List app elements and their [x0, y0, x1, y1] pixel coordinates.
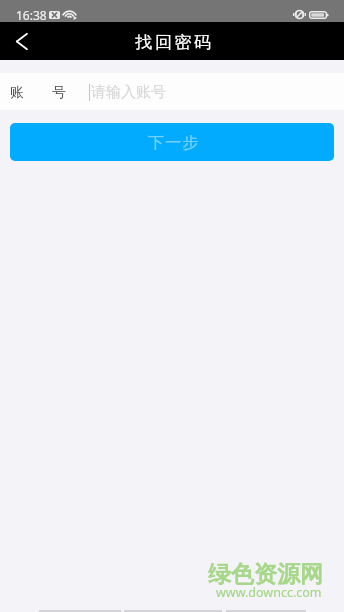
staticText: www.downcc.com — [216, 584, 322, 601]
button[interactable]: 下一步 — [10, 123, 334, 161]
staticText: 下一步 — [148, 133, 200, 153]
button[interactable]: 账 — [0, 73, 344, 110]
staticText: 号 — [52, 84, 66, 102]
staticText: 16:38 — [16, 7, 47, 23]
staticText: 绿色资源网 — [208, 560, 323, 589]
staticText: 找回密码 — [135, 32, 214, 53]
button[interactable]: Back — [0, 22, 44, 60]
staticText: 请输入账号 — [91, 83, 166, 102]
staticText: 账 — [10, 84, 24, 102]
